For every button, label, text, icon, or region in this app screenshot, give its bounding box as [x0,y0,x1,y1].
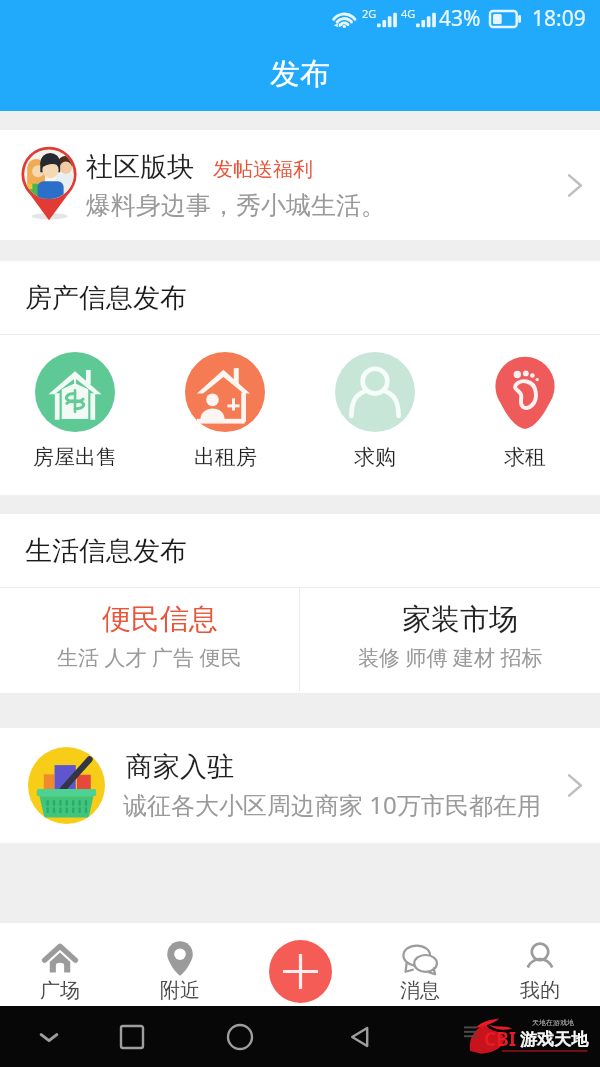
staticText: 43% [439,4,481,33]
button[interactable]: 我的 [480,923,600,1006]
staticText: 生活信息发布 [25,534,187,568]
staticText: 诚征各大小区周边商家 10万市民都在用 [123,788,541,821]
staticText: 房产信息发布 [25,281,187,315]
staticText: 爆料身边事，秀小城生活。 [86,190,386,221]
button[interactable]: Publish [269,940,332,1003]
button[interactable]: Back [345,1022,375,1052]
staticText: 房屋出售 [33,444,117,470]
staticText: 出租房 [194,444,257,470]
staticText: 求租 [504,444,546,470]
button[interactable]: 家装市场 [300,588,600,672]
button[interactable]: 社区版块 [0,130,600,240]
staticText: 消息 [400,978,440,1003]
staticText: 附近 [160,978,200,1003]
staticText: 商家入驻 [126,750,234,784]
staticText: 18:09 [532,4,586,33]
staticText: 我的 [520,978,560,1003]
button[interactable]: 附近 [120,923,240,1006]
staticText: 天地在游戏地 [532,1018,574,1027]
button[interactable]: 求租 [450,335,600,470]
button[interactable]: 房屋出售 [0,335,150,470]
button[interactable]: 消息 [360,923,480,1006]
staticText: 发布 [270,55,330,93]
button[interactable]: Hide keyboard [34,1022,64,1052]
staticText: 发帖送福利 [213,157,313,182]
button[interactable]: Recents [117,1022,147,1052]
button[interactable]: 便民信息 [0,588,299,672]
staticText: 装修 师傅 建材 招标 [358,643,543,672]
staticText: 社区版块 [86,150,194,184]
staticText: 2G [362,6,377,21]
staticText: 游戏天地 [520,1029,588,1050]
staticText: 4G [401,6,416,21]
staticText: 广场 [40,978,80,1003]
button[interactable]: 商家入驻 [0,728,600,843]
staticText: 生活 人才 广告 便民 [57,643,242,672]
button[interactable]: 广场 [0,923,120,1006]
staticText: 便民信息 [102,601,218,638]
button[interactable]: 出租房 [150,335,300,470]
button[interactable]: 求购 [300,335,450,470]
button[interactable]: Home [225,1022,255,1052]
staticText: 求购 [354,444,396,470]
staticText: CBI [484,1026,517,1052]
staticText: 家装市场 [402,601,518,638]
